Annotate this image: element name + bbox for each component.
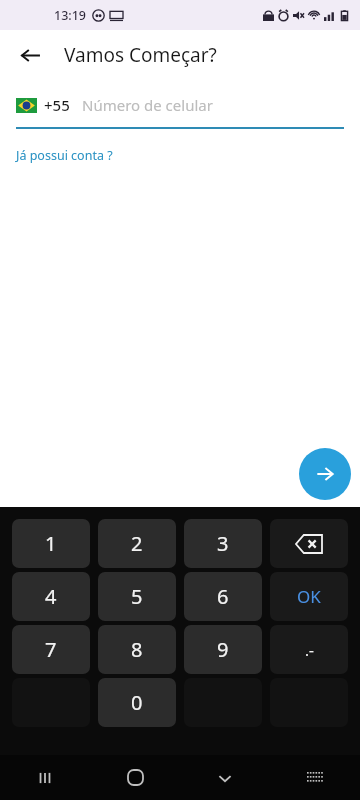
button[interactable]: Início bbox=[90, 755, 180, 800]
staticText: 3 bbox=[217, 530, 229, 557]
staticText: 4 bbox=[45, 583, 57, 610]
button[interactable] bbox=[16, 98, 37, 113]
button[interactable]: 4 bbox=[12, 572, 90, 621]
button[interactable]: 6 bbox=[184, 572, 262, 621]
staticText: 9 bbox=[217, 636, 229, 663]
button[interactable]: Já possui conta ? bbox=[16, 147, 113, 164]
button[interactable]: Voltar bbox=[12, 37, 48, 73]
staticText: 2 bbox=[131, 530, 143, 557]
button[interactable]: 2 bbox=[98, 519, 176, 568]
button[interactable]: .- bbox=[270, 625, 348, 674]
button[interactable]: 1 bbox=[12, 519, 90, 568]
staticText: 7 bbox=[45, 636, 57, 663]
button[interactable]: 9 bbox=[184, 625, 262, 674]
staticText: 8 bbox=[131, 636, 143, 663]
button[interactable]: Avançar bbox=[299, 448, 351, 500]
button[interactable]: 8 bbox=[98, 625, 176, 674]
button[interactable]: Teclado bbox=[270, 755, 360, 800]
staticText: Vamos Começar? bbox=[64, 42, 217, 68]
button[interactable]: Recentes bbox=[0, 755, 90, 800]
button[interactable]: Apagar bbox=[270, 519, 348, 568]
staticText: +55 bbox=[44, 95, 70, 115]
button[interactable]: 5 bbox=[98, 572, 176, 621]
staticText: 1 bbox=[45, 530, 57, 557]
staticText: OK bbox=[297, 585, 321, 608]
button[interactable]: Fechar teclado bbox=[180, 755, 270, 800]
button[interactable]: OK bbox=[270, 572, 348, 621]
staticText: 13:19 bbox=[54, 7, 87, 24]
button[interactable]: 0 bbox=[98, 678, 176, 727]
staticText: 5 bbox=[131, 583, 143, 610]
staticText: 6 bbox=[217, 583, 229, 610]
button[interactable]: Número de celular bbox=[82, 95, 344, 115]
staticText: .- bbox=[305, 640, 314, 660]
button[interactable]: 3 bbox=[184, 519, 262, 568]
button[interactable]: 7 bbox=[12, 625, 90, 674]
staticText: 0 bbox=[131, 689, 143, 716]
